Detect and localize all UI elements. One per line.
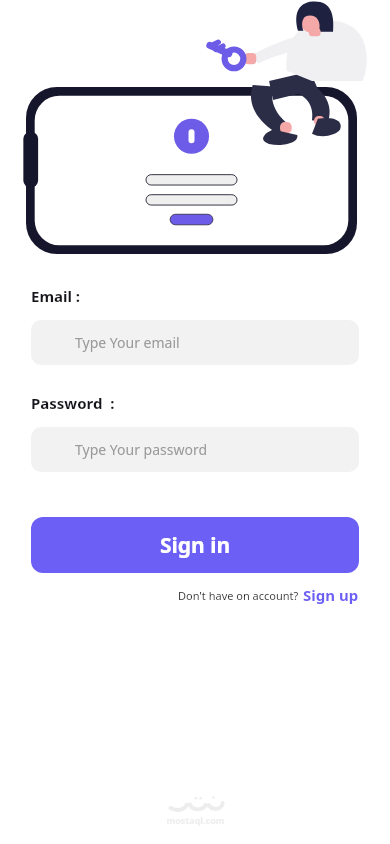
button[interactable]: Sign in [31,517,359,573]
staticText: mostaql.com [166,814,225,826]
staticText: Type Your email [75,333,180,352]
button[interactable]: Sign up [303,585,359,605]
button[interactable]: Type Your email [31,320,359,365]
staticText: Sign up [303,585,359,605]
staticText: Don't have on account? [178,588,299,603]
staticText: Email : [31,286,81,306]
staticText: Sign in [160,531,231,560]
button[interactable]: Type Your password [31,427,359,472]
staticText: Type Your password [75,440,208,459]
staticText: Password : [31,393,115,413]
